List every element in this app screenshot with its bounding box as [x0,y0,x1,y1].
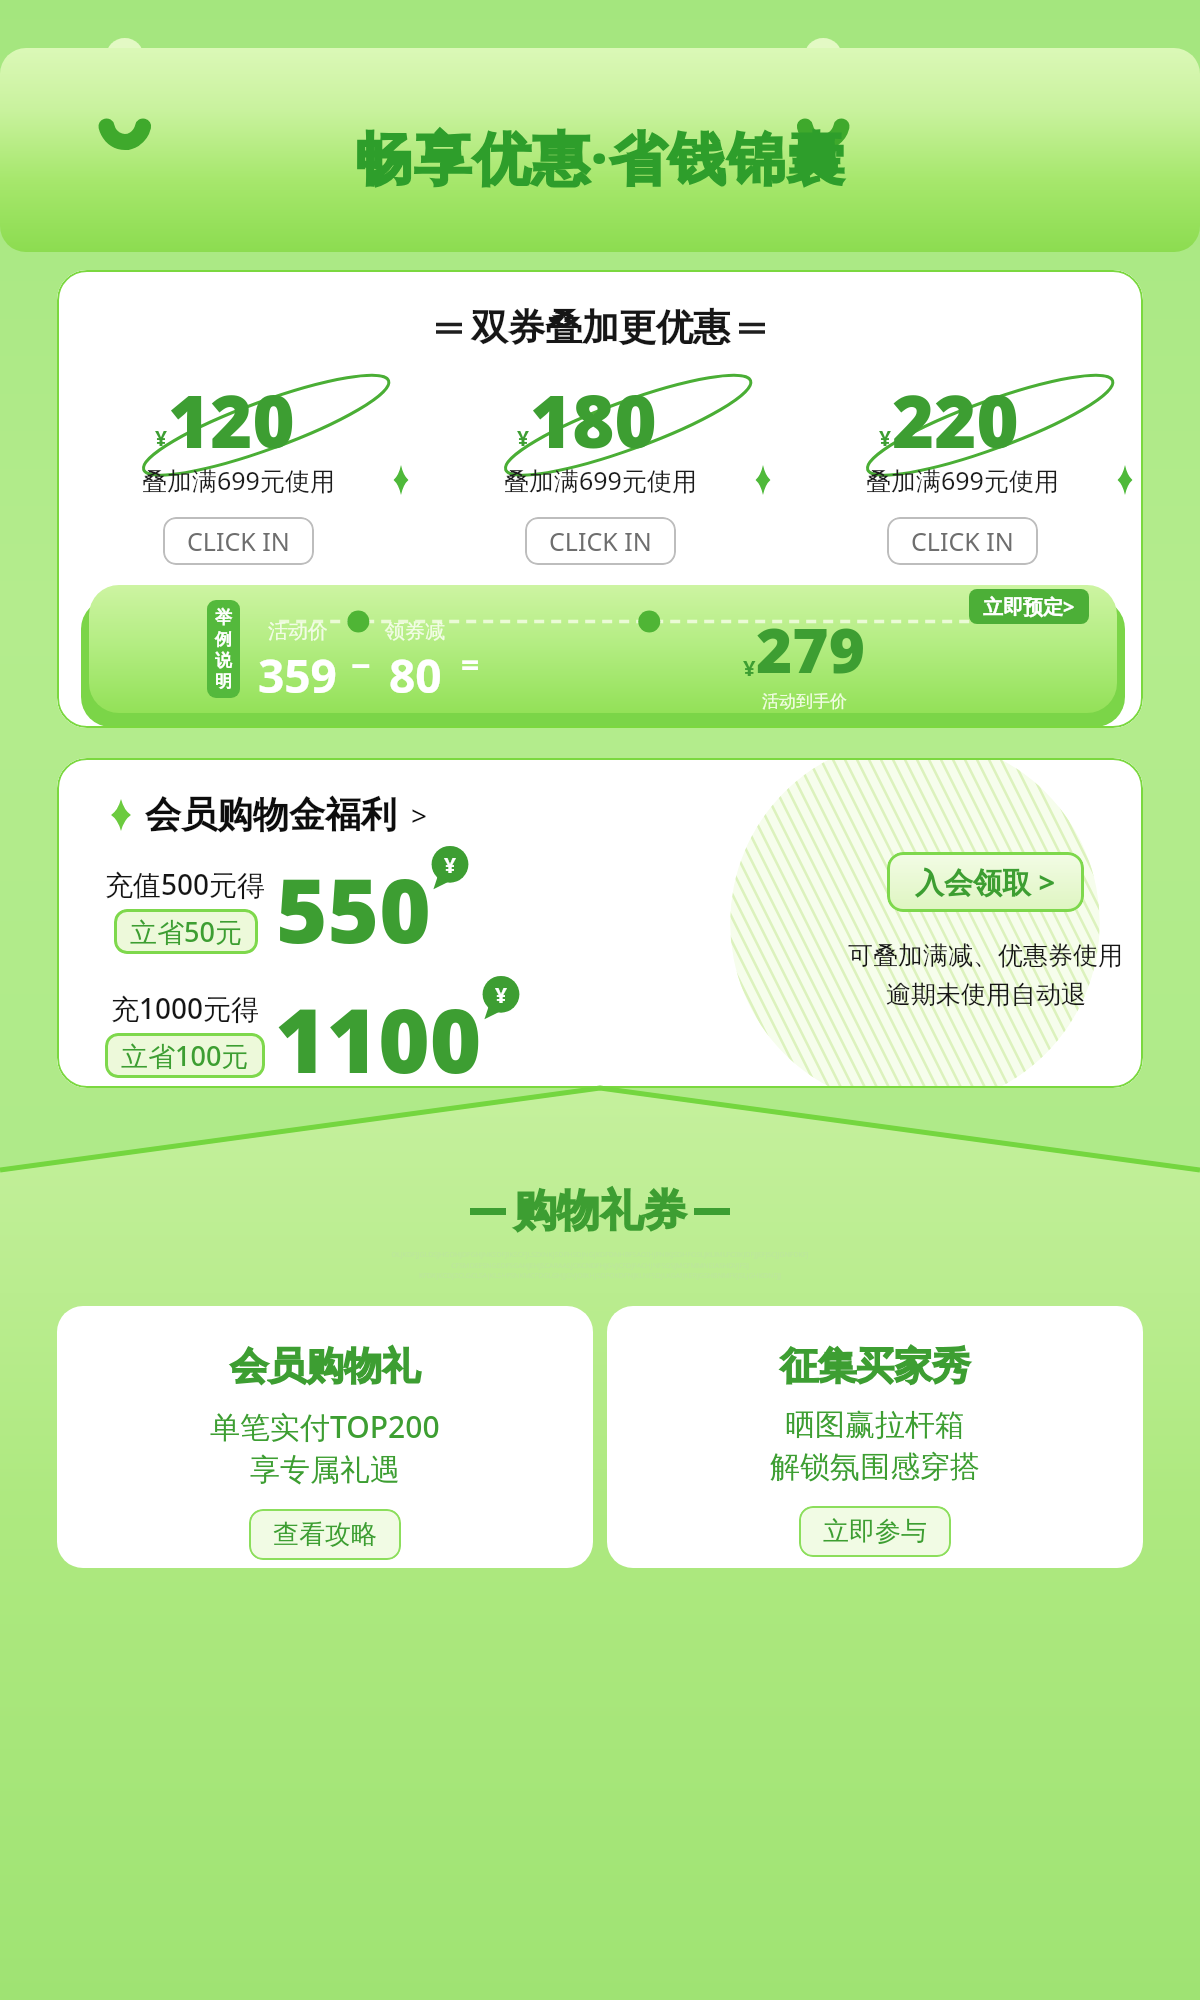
staticText: 购物礼券 [514,1184,686,1238]
staticText: 359 [258,644,337,707]
staticText: 立省100元 [121,1037,249,1074]
staticText: 叠加满699元使用 [504,463,697,497]
staticText: 80 [389,644,442,707]
staticText: 550 [276,849,431,969]
staticText: 双券叠加更优惠 [471,304,730,351]
button[interactable]: 入会领取 > [887,852,1084,912]
staticText: 征集买家秀 [780,1342,970,1390]
staticText: 叠加满699元使用 [866,463,1059,497]
staticText: 活动到手价 [762,691,847,712]
staticText: CLICK IN [549,524,652,558]
staticText: = [461,643,480,687]
staticText: 单笔实付TOP200 [210,1406,440,1447]
staticText: 活动价 [268,619,328,644]
staticText: ¥ [517,424,530,453]
staticText: 立即预定> [983,593,1075,620]
button[interactable]: 查看攻略 [249,1509,401,1560]
staticText: 充值500元得 [105,865,266,903]
button[interactable]: CLICK IN [887,517,1038,565]
staticText: ¥ [444,851,457,880]
staticText: > [411,796,428,834]
button[interactable]: 会员购物礼 [57,1306,593,1568]
staticText: 晒图赢拉杆箱 [785,1406,965,1444]
staticText: 1100 [275,979,482,1088]
staticText: 可叠加满减、优惠券使用 [848,940,1123,971]
staticText: − [351,642,371,688]
staticText: CLICK IN [187,524,290,558]
button[interactable]: 立即预定> [969,589,1089,624]
staticText: CLICK IN [911,524,1014,558]
staticText: 充1000元得 [111,989,260,1027]
button[interactable]: CLICK IN [525,517,676,565]
staticText: 解锁氛围感穿搭 [770,1448,980,1486]
staticText: 279 [756,607,865,691]
staticText: 立省50元 [130,913,242,950]
staticText: ¥ [879,424,892,453]
button[interactable]: 立即参与 [799,1506,951,1557]
staticText: 会员购物礼 [230,1342,420,1390]
staticText: 叠加满699元使用 [142,463,335,497]
staticText: 180 [530,371,657,463]
staticText: 入会领取 > [915,862,1056,902]
staticText: ¥ [495,981,508,1010]
staticText: 会员购物金福利 [145,792,397,837]
staticText: 逾期未使用自动退 [886,979,1086,1010]
staticText: 举例说明 [214,607,233,692]
staticText: 畅享优惠·省钱锦囊 [355,118,846,196]
staticText: 220 [892,371,1019,463]
staticText: 享专属礼遇 [250,1451,400,1489]
button[interactable]: 征集买家秀 [607,1306,1143,1568]
button[interactable]: 会员购物金福利 [105,792,428,837]
staticText: 立即参与 [823,1515,927,1548]
staticText: 查看攻略 [273,1518,377,1551]
staticText: 领券减 [385,619,445,644]
button[interactable]: CLICK IN [163,517,314,565]
staticText: 120 [168,371,295,463]
staticText: ¥ [743,652,756,682]
staticText: ¥ [155,424,168,453]
